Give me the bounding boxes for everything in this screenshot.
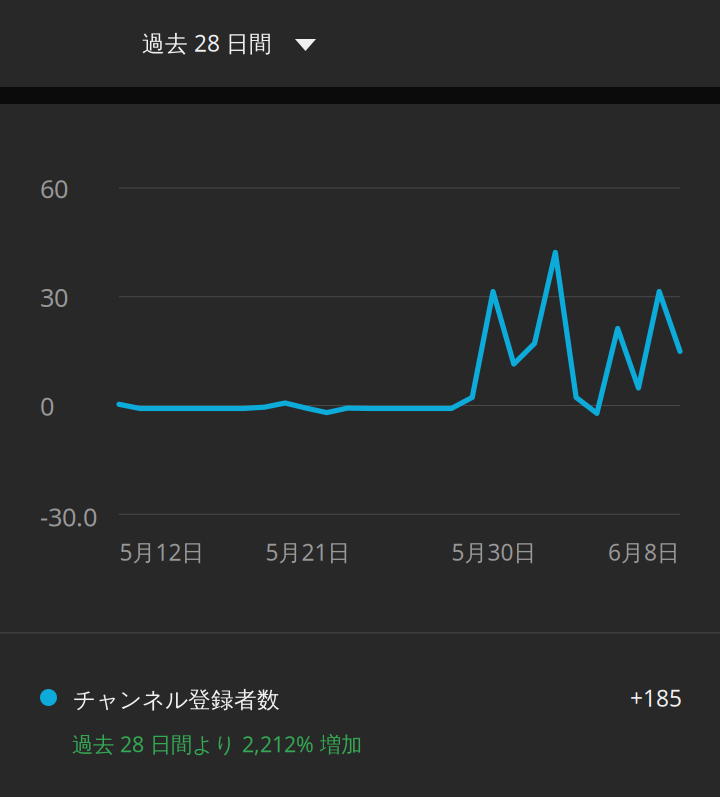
staticText: 過去 28 日間 bbox=[142, 28, 272, 58]
staticText: +185 bbox=[630, 683, 682, 713]
staticText: 6月8日 bbox=[608, 537, 680, 567]
staticText: 0 bbox=[40, 389, 54, 423]
button[interactable]: チャンネル登録者数 bbox=[40, 684, 680, 778]
staticText: -30.0 bbox=[40, 500, 97, 533]
staticText: 過去 28 日間より 2,212% 増加 bbox=[72, 730, 362, 758]
button[interactable]: 過去 28 日間 bbox=[126, 15, 332, 71]
staticText: 30 bbox=[40, 280, 68, 314]
staticText: 5月30日 bbox=[451, 537, 536, 567]
staticText: 5月21日 bbox=[265, 537, 350, 567]
staticText: 5月12日 bbox=[119, 537, 204, 567]
staticText: 60 bbox=[40, 172, 68, 205]
staticText: チャンネル登録者数 bbox=[73, 686, 280, 714]
